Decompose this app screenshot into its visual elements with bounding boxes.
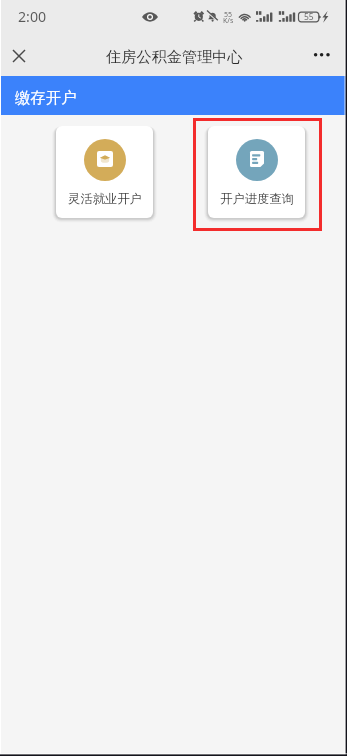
staticText: 缴存开户 [15,88,77,107]
staticText: 55 [224,10,233,20]
staticText: 住房公积金管理中心 [106,47,243,66]
staticText: 开户进度查询 [220,191,294,206]
button[interactable]: More options [305,36,339,74]
staticText: 55 [304,11,314,23]
staticText: 灵活就业开户 [68,191,142,206]
staticText: 2:00 [18,7,47,26]
button[interactable]: Close [2,39,35,72]
button[interactable]: 开户进度查询 [208,126,305,218]
staticText: K/s [223,16,234,26]
button[interactable]: 灵活就业开户 [56,126,153,218]
